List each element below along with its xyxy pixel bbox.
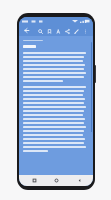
button[interactable]: More	[81, 26, 90, 36]
button[interactable]: Back	[22, 26, 31, 35]
button[interactable]: Search	[36, 26, 45, 36]
button[interactable]: Recents	[26, 175, 42, 186]
button[interactable]: Share	[63, 26, 72, 36]
button[interactable]: Font size	[54, 26, 63, 36]
button[interactable]: Bookmark	[45, 26, 54, 36]
button[interactable]: Home	[48, 175, 64, 186]
button[interactable]: Edit	[72, 26, 81, 36]
button[interactable]: Back	[71, 175, 87, 186]
